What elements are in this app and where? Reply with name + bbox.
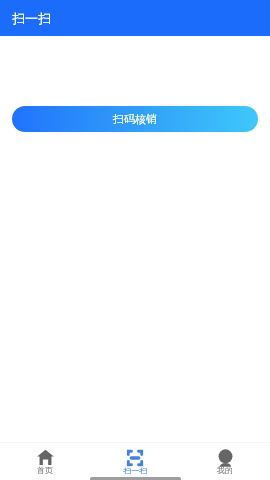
button[interactable]: 扫码核销 — [12, 106, 258, 132]
staticText: 扫一扫 — [123, 466, 147, 474]
button[interactable]: 扫一扫 — [90, 443, 180, 475]
staticText: 首页 — [37, 465, 53, 474]
staticText: 扫码核销 — [113, 112, 157, 126]
staticText: 扫一扫 — [12, 10, 51, 26]
button[interactable]: 我的 — [180, 443, 270, 475]
staticText: 我的 — [217, 465, 233, 474]
button[interactable]: 首页 — [0, 443, 90, 475]
